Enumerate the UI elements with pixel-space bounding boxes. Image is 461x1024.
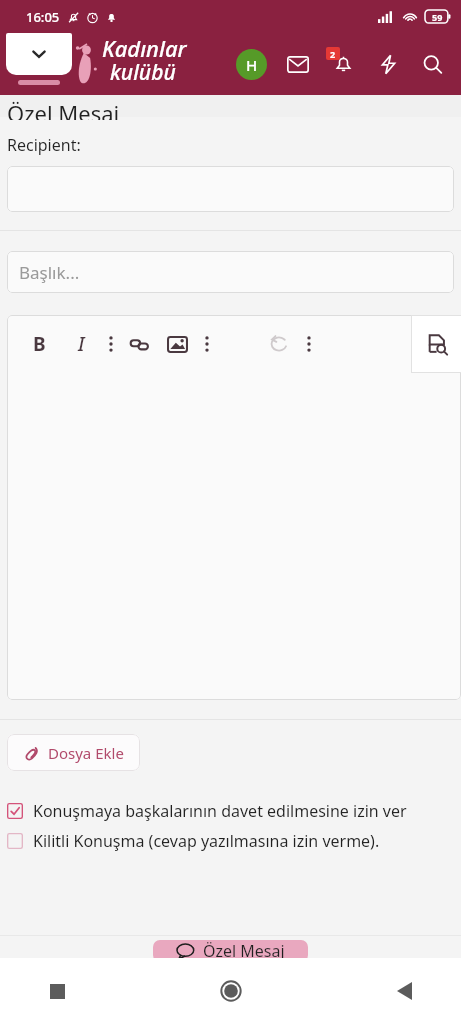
staticText: 16:05 <box>26 8 60 26</box>
button[interactable]: Insert link <box>125 324 153 364</box>
staticText: H <box>246 55 258 75</box>
staticText: Kadınlar <box>102 33 187 63</box>
staticText: Recipient: <box>7 134 81 156</box>
button[interactable]: Search <box>415 47 449 81</box>
staticText: Kilitli Konuşma (cevap yazılmasına izin … <box>33 830 380 852</box>
button[interactable] <box>7 166 454 212</box>
staticText: B <box>33 331 46 357</box>
button[interactable]: Hide keyboard <box>6 33 72 75</box>
button[interactable]: Activity <box>371 47 405 81</box>
staticText: Başlık... <box>19 261 80 284</box>
staticText: I <box>78 331 85 357</box>
staticText: Özel Mesaj <box>7 98 120 120</box>
button[interactable]: Messages <box>281 47 315 81</box>
staticText: Konuşmaya başkalarının davet edilmesine … <box>33 800 407 822</box>
button[interactable]: More options <box>199 327 215 361</box>
button[interactable]: Undo <box>265 324 293 364</box>
button[interactable]: Bold <box>25 324 53 364</box>
button[interactable]: More options <box>301 327 317 361</box>
button[interactable]: Italic <box>67 324 95 364</box>
button[interactable]: Özel Mesaj <box>153 940 308 962</box>
button[interactable]: Home <box>208 968 254 1014</box>
button[interactable]: More options <box>103 327 119 361</box>
staticText: 2 <box>330 48 336 60</box>
button[interactable]: Preview <box>411 315 461 373</box>
button[interactable]: Başlık... <box>7 251 454 293</box>
button[interactable]: Kilitli Konuşma (cevap yazılmasına izin … <box>7 830 445 852</box>
button[interactable]: Insert image <box>163 324 191 364</box>
staticText: kulübü <box>110 58 176 87</box>
button[interactable]: Back <box>381 968 427 1014</box>
staticText: Özel Mesaj <box>203 940 285 962</box>
staticText: 59 <box>432 11 443 23</box>
button[interactable]: Recent apps <box>34 968 80 1014</box>
button[interactable]: Notifications <box>325 46 361 82</box>
button[interactable]: Dosya Ekle <box>7 734 140 771</box>
button[interactable]: Profile <box>236 49 267 80</box>
button[interactable]: Konuşmaya başkalarının davet edilmesine … <box>7 800 445 822</box>
staticText: Dosya Ekle <box>48 743 124 763</box>
